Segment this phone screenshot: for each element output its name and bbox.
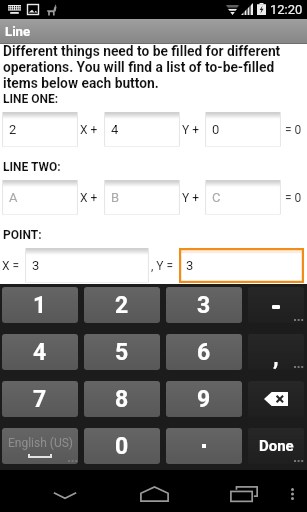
button[interactable] (166, 428, 242, 464)
staticText: 3 (186, 258, 194, 273)
staticText: = 0 (285, 191, 302, 205)
button[interactable]: B (104, 180, 180, 215)
button[interactable]: Backspace (248, 381, 304, 417)
staticText: 2 (9, 122, 17, 137)
staticText: 8 (115, 386, 129, 413)
staticText: Line (5, 24, 31, 39)
button[interactable]: 4 (104, 112, 180, 147)
button[interactable]: Home (130, 474, 178, 512)
staticText: Done (259, 437, 294, 455)
button[interactable]: 0 (84, 428, 160, 464)
button[interactable]: Hide keyboard (41, 480, 89, 510)
button[interactable]: 4 (2, 334, 78, 370)
button[interactable]: 7 (2, 381, 78, 417)
button[interactable]: Done (248, 428, 304, 464)
button[interactable]: 6 (166, 334, 242, 370)
staticText: X = (2, 259, 20, 273)
staticText: Y + (182, 123, 199, 137)
staticText: 3 (197, 292, 211, 319)
button[interactable]: 1 (2, 287, 78, 323)
staticText: 0 (115, 433, 129, 460)
button[interactable]: 9 (166, 381, 242, 417)
button[interactable]: A (2, 180, 78, 215)
button[interactable]: 3 (166, 287, 242, 323)
staticText: 3 (32, 258, 40, 273)
staticText: POINT: (3, 228, 42, 242)
staticText: X + (80, 123, 98, 137)
staticText: , Y = (151, 259, 174, 273)
button[interactable]: 3 (25, 248, 149, 283)
staticText: 2 (115, 292, 129, 319)
staticText: 4 (33, 339, 47, 366)
staticText: Different things need to be filled for d… (3, 43, 305, 91)
button[interactable]: 2 (84, 287, 160, 323)
staticText: 9 (197, 386, 211, 413)
button[interactable]: 0 (205, 112, 281, 147)
button[interactable]: - (248, 287, 304, 323)
button[interactable]: Recent apps (220, 474, 268, 512)
staticText: 7 (33, 386, 47, 413)
staticText: 0 (212, 122, 220, 137)
button[interactable]: 2 (2, 112, 78, 147)
button[interactable]: 8 (84, 381, 160, 417)
staticText: 4 (111, 122, 119, 137)
button[interactable]: C (205, 180, 281, 215)
button[interactable]: 3 (179, 248, 304, 283)
button[interactable]: 5 (84, 334, 160, 370)
staticText: 6 (197, 339, 211, 366)
staticText: LINE ONE: (3, 92, 59, 106)
staticText: A (9, 190, 18, 205)
staticText: Y + (182, 191, 199, 205)
staticText: C (212, 190, 221, 205)
staticText: LINE TWO: (3, 160, 61, 174)
staticText: X + (80, 191, 98, 205)
staticText: 5 (115, 339, 129, 366)
staticText: = 0 (285, 123, 302, 137)
staticText: 1 (33, 292, 47, 319)
staticText: 12:20 (270, 2, 303, 17)
staticText: English (US) (8, 436, 73, 450)
button[interactable]: English (US) (2, 428, 78, 464)
staticText: , (273, 344, 279, 370)
button[interactable]: More options (281, 474, 303, 512)
button[interactable]: , (248, 334, 304, 370)
staticText: B (111, 190, 120, 205)
